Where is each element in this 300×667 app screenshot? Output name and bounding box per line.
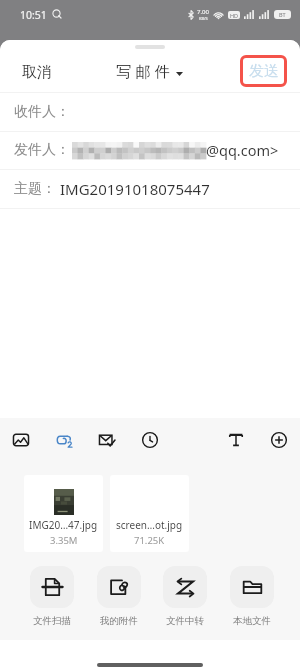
- button[interactable]: Mail receipt: [93, 426, 121, 454]
- button[interactable]: Text format: [222, 426, 250, 454]
- staticText: IMG20191018075447: [60, 179, 210, 199]
- staticText: BT: [279, 11, 286, 18]
- staticText: 本地文件: [233, 615, 271, 627]
- button[interactable]: 收件人：: [0, 93, 300, 131]
- button[interactable]: screen…ot.jpg: [110, 475, 189, 552]
- button[interactable]: IMG20…47.jpg: [24, 475, 103, 552]
- button[interactable]: 取消: [0, 56, 64, 89]
- staticText: 文件中转: [166, 615, 204, 627]
- button[interactable]: Schedule send: [136, 426, 164, 454]
- button[interactable]: Insert image: [7, 426, 35, 454]
- button[interactable]: Attachments: [50, 426, 78, 454]
- button[interactable]: 发送: [240, 55, 287, 87]
- staticText: 写邮件: [116, 63, 175, 82]
- staticText: @qq.com>: [206, 140, 279, 160]
- staticText: KB/S: [199, 16, 208, 21]
- staticText: 主题：: [14, 180, 56, 198]
- button[interactable]: 主题：: [0, 170, 300, 208]
- button[interactable]: 写邮件: [108, 56, 191, 89]
- button[interactable]: 我的附件: [97, 566, 141, 627]
- staticText: 7.00: [197, 8, 209, 16]
- staticText: 我的附件: [100, 615, 138, 627]
- button[interactable]: 文件中转: [163, 566, 207, 627]
- staticText: 10:51: [20, 8, 47, 22]
- staticText: 收件人：: [14, 103, 70, 121]
- staticText: IMG20…47.jpg: [29, 518, 98, 532]
- button[interactable]: More options: [265, 426, 293, 454]
- staticText: 发送: [249, 62, 279, 81]
- staticText: 取消: [22, 63, 52, 82]
- staticText: 文件扫描: [33, 615, 71, 627]
- staticText: 发件人：: [14, 141, 70, 159]
- staticText: 71.25K: [134, 534, 165, 547]
- staticText: HD: [230, 12, 239, 19]
- button[interactable]: 文件扫描: [30, 566, 74, 627]
- staticText: 3.35M: [50, 534, 78, 547]
- button[interactable]: 发件人：: [0, 132, 300, 169]
- button[interactable]: 本地文件: [230, 566, 274, 627]
- staticText: screen…ot.jpg: [116, 518, 183, 532]
